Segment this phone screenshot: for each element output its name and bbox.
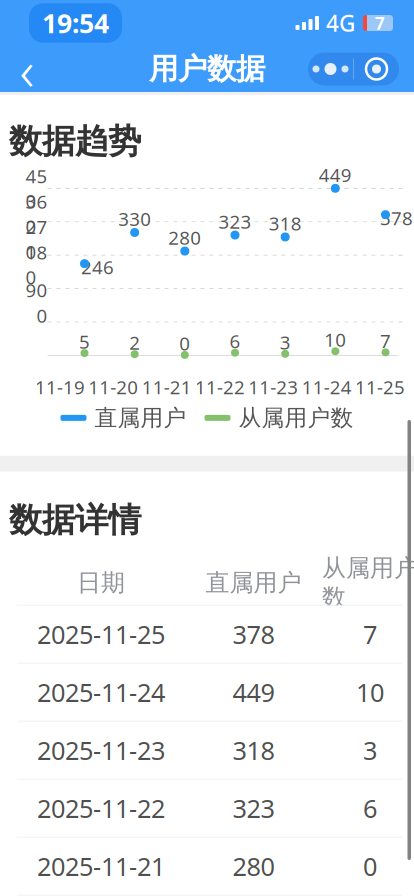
button[interactable]: 2025-11-25: [0, 606, 414, 664]
staticText: 6: [229, 329, 240, 353]
staticText: 360: [25, 189, 47, 239]
button[interactable]: More options: [308, 52, 353, 85]
staticText: 2025-11-23: [37, 733, 165, 767]
staticText: 11-22: [195, 374, 245, 399]
staticText: 7: [363, 617, 377, 651]
staticText: 246: [81, 255, 114, 279]
staticText: 323: [232, 791, 274, 825]
staticText: 11-21: [142, 374, 192, 399]
staticText: 11-25: [355, 374, 405, 399]
button[interactable]: 2025-11-24: [0, 664, 414, 722]
staticText: 0: [36, 303, 47, 328]
button[interactable]: 2025-11-22: [0, 780, 414, 838]
staticText: 330: [118, 206, 151, 231]
staticText: 10: [356, 675, 384, 709]
staticText: 4G: [326, 8, 355, 38]
staticText: 2025-11-25: [37, 617, 165, 651]
staticText: 11-23: [248, 374, 298, 399]
staticText: 378: [380, 206, 413, 230]
staticText: ‹: [19, 32, 34, 106]
staticText: 280: [232, 849, 274, 883]
staticText: 2025-11-21: [37, 849, 165, 883]
staticText: 449: [232, 675, 274, 709]
staticText: 318: [269, 211, 302, 236]
staticText: 449: [319, 162, 352, 187]
staticText: 323: [218, 209, 251, 234]
staticText: 180: [25, 240, 47, 289]
staticText: 用户数据: [149, 51, 265, 87]
staticText: 11-24: [302, 374, 352, 399]
staticText: 2025-11-22: [37, 791, 165, 825]
button[interactable]: Back: [0, 46, 54, 92]
staticText: 从属用户数: [238, 404, 353, 432]
staticText: 280: [168, 225, 201, 250]
staticText: 19:54: [42, 5, 109, 41]
staticText: 378: [232, 617, 274, 651]
staticText: 6: [363, 791, 377, 825]
staticText: 11-19: [35, 374, 85, 399]
staticText: 10: [324, 327, 346, 352]
staticText: 318: [232, 733, 274, 767]
staticText: 从属用户数: [322, 553, 414, 612]
staticText: 2025-11-24: [37, 675, 165, 709]
button[interactable]: 2025-11-21: [0, 838, 414, 896]
staticText: 0: [179, 331, 190, 356]
button[interactable]: 2025-11-23: [0, 722, 414, 780]
staticText: 3: [363, 733, 377, 767]
staticText: 450: [25, 164, 47, 213]
staticText: 5: [79, 329, 90, 354]
staticText: 数据趋势: [9, 121, 141, 162]
staticText: 11-20: [88, 374, 138, 399]
staticText: 7: [380, 328, 391, 353]
staticText: 0: [363, 849, 377, 883]
staticText: 直属用户: [205, 568, 301, 597]
staticText: 2: [129, 330, 140, 355]
staticText: 数据详情: [9, 500, 141, 541]
staticText: 270: [25, 214, 47, 264]
staticText: 3: [280, 330, 291, 355]
staticText: 直属用户: [94, 404, 186, 432]
button[interactable]: Close mini program: [354, 52, 399, 85]
staticText: 90: [25, 278, 47, 302]
staticText: 7: [375, 11, 385, 34]
staticText: 日期: [77, 568, 125, 597]
